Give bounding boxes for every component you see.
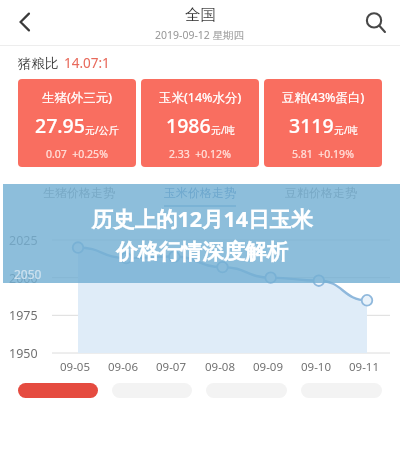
button[interactable]: 豆粕(43%蛋白) — [264, 79, 382, 167]
staticText: 1986 — [166, 112, 211, 139]
staticText: 豆粕价格走势 — [285, 185, 357, 200]
staticText: 3119 — [289, 112, 334, 139]
staticText: 价格行情深度解析 — [116, 238, 288, 265]
staticText: 09-05 — [60, 359, 91, 375]
staticText: 历史上的12月14日玉米 — [91, 204, 313, 233]
staticText: 元/吨 — [334, 123, 358, 137]
button[interactable]: 玉米价格走势 — [158, 183, 242, 209]
staticText: 全国 — [185, 5, 216, 25]
button[interactable]: 生猪(外三元) — [18, 79, 136, 167]
staticText: 元/公斤 — [85, 123, 119, 137]
staticText: 09-08 — [205, 359, 236, 375]
staticText: 1950 — [9, 345, 38, 362]
button[interactable]: 豆粕价格走势 — [279, 183, 363, 209]
staticText: 1975 — [9, 307, 38, 324]
staticText: 玉米(14%水分) — [159, 89, 242, 106]
staticText: 27.95 — [35, 112, 85, 139]
staticText: 0.07 +0.25% — [46, 147, 108, 161]
staticText: 元/吨 — [211, 123, 235, 137]
staticText: 09-06 — [108, 359, 139, 375]
button[interactable]: Search — [354, 1, 396, 43]
button[interactable]: Back — [4, 1, 46, 43]
staticText: 玉米价格走势 — [164, 185, 236, 200]
staticText: 猪粮比 — [18, 55, 59, 72]
staticText: 2050 — [14, 266, 42, 282]
staticText: 生猪价格走势 — [43, 185, 115, 200]
staticText: 09-09 — [253, 359, 284, 375]
button[interactable]: 玉米(14%水分) — [141, 79, 259, 167]
staticText: 09-10 — [301, 359, 332, 375]
staticText: 生猪(外三元) — [42, 89, 113, 106]
staticText: 09-11 — [349, 359, 380, 375]
staticText: 2019-09-12 星期四 — [155, 28, 245, 42]
staticText: 2000 — [9, 270, 38, 287]
staticText: 14.07:1 — [64, 54, 110, 72]
staticText: 豆粕(43%蛋白) — [282, 89, 365, 106]
staticText: 2025 — [9, 232, 38, 249]
staticText: 5.81 +0.19% — [292, 147, 354, 161]
staticText: 2.33 +0.12% — [169, 147, 231, 161]
button[interactable]: 生猪价格走势 — [37, 183, 121, 209]
staticText: 09-07 — [156, 359, 187, 375]
button[interactable]: Selected period — [18, 383, 98, 398]
